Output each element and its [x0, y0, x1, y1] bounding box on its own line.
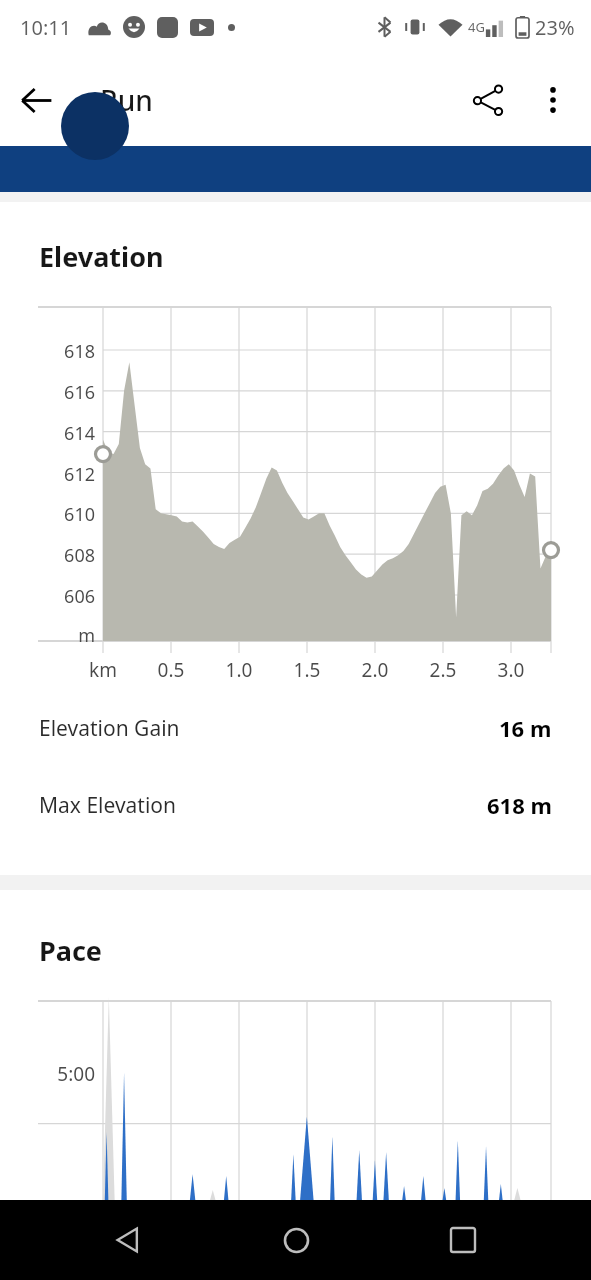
- staticText: 2.5: [417, 657, 469, 683]
- staticText: Run: [100, 81, 153, 119]
- staticText: Pace: [39, 932, 102, 969]
- staticText: 608: [0, 543, 95, 568]
- button[interactable]: Max Elevation: [0, 790, 591, 820]
- staticText: m: [0, 623, 95, 648]
- staticText: 614: [0, 421, 95, 446]
- staticText: 16 m: [499, 713, 552, 743]
- button[interactable]: Back: [0, 54, 72, 146]
- button[interactable]: Elevation Gain: [0, 713, 591, 743]
- staticText: 4G: [468, 18, 485, 36]
- staticText: 1.5: [281, 657, 333, 683]
- staticText: 3.0: [485, 657, 537, 683]
- button[interactable]: Back: [88, 1200, 168, 1280]
- staticText: 1.0: [213, 657, 265, 683]
- staticText: km: [77, 657, 129, 683]
- staticText: 618 m: [487, 790, 552, 820]
- button[interactable]: Home: [256, 1200, 336, 1280]
- staticText: Max Elevation: [39, 791, 177, 820]
- staticText: 606: [0, 584, 95, 609]
- staticText: 0.5: [145, 657, 197, 683]
- staticText: 2.0: [349, 657, 401, 683]
- staticText: 616: [0, 380, 95, 405]
- staticText: Elevation: [39, 238, 164, 275]
- staticText: 610: [0, 502, 95, 527]
- button[interactable]: Recent apps: [423, 1200, 503, 1280]
- button[interactable]: Share: [455, 54, 521, 146]
- staticText: 23%: [535, 14, 575, 41]
- staticText: 5:00: [0, 1061, 95, 1087]
- staticText: Elevation Gain: [39, 714, 180, 743]
- staticText: 10:11: [20, 14, 72, 41]
- button[interactable]: More options: [521, 54, 585, 146]
- staticText: 612: [0, 462, 95, 487]
- staticText: 618: [0, 339, 95, 364]
